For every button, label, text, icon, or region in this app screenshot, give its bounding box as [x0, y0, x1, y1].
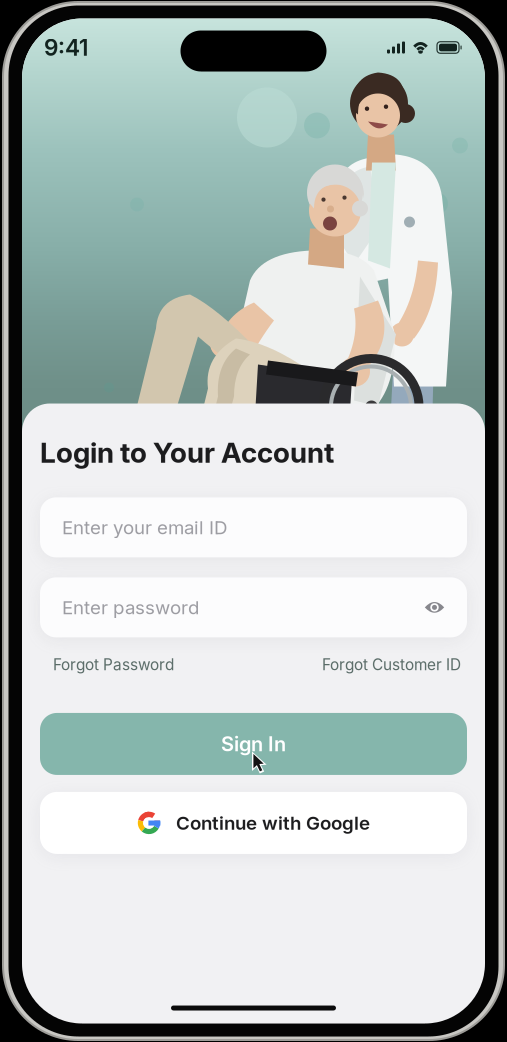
staticText: Continue with Google: [176, 812, 370, 834]
button[interactable]: Sign In: [40, 713, 467, 775]
staticText: Login to Your Account: [40, 435, 334, 469]
button[interactable]: Forgot Password: [53, 655, 174, 674]
button[interactable]: Continue with Google: [40, 792, 467, 854]
staticText: Sign In: [221, 732, 286, 756]
staticText: Forgot Password: [53, 655, 174, 674]
button[interactable]: Forgot Customer ID: [322, 655, 461, 674]
staticText: Enter password: [62, 596, 199, 619]
staticText: Forgot Customer ID: [322, 655, 461, 674]
staticText: 9:41: [44, 34, 88, 61]
staticText: Enter your email ID: [62, 516, 227, 539]
